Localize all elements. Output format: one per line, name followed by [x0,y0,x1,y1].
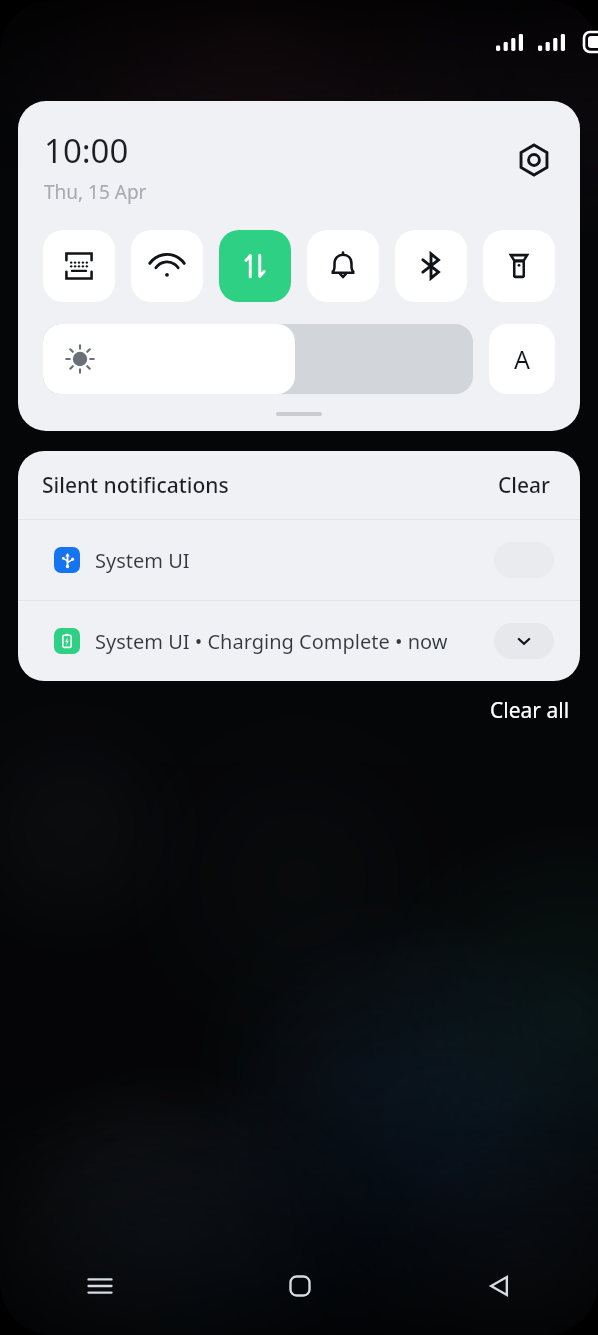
button[interactable]: Notifications [307,230,379,302]
button[interactable]: Recents [0,1251,200,1321]
button[interactable]: Mobile data [219,230,291,302]
button[interactable]: Wi-Fi [131,230,203,302]
button[interactable]: Back [399,1251,598,1321]
button[interactable]: Settings [510,136,558,184]
staticText: A [514,342,530,376]
button[interactable]: Auto brightness [489,324,555,394]
staticText: System UI [95,547,494,574]
staticText: 10:00 [44,128,129,173]
staticText: Thu, 15 Apr [44,179,147,205]
staticText: Clear [498,471,550,500]
button[interactable]: System UI • Charging Complete • now [18,601,580,681]
button[interactable]: Bluetooth [395,230,467,302]
staticText: Silent notifications [42,471,492,500]
button[interactable]: Scan [43,230,115,302]
button[interactable]: Brightness [43,324,473,394]
button[interactable]: Clear all [480,690,580,731]
button[interactable]: System UI [18,520,580,600]
button[interactable]: Home [200,1251,399,1321]
button[interactable]: Expand [494,623,554,659]
button[interactable]: Clear [492,465,556,506]
button[interactable]: Flashlight [483,230,555,302]
staticText: Clear all [490,696,570,725]
staticText: System UI • Charging Complete • now [95,628,494,655]
